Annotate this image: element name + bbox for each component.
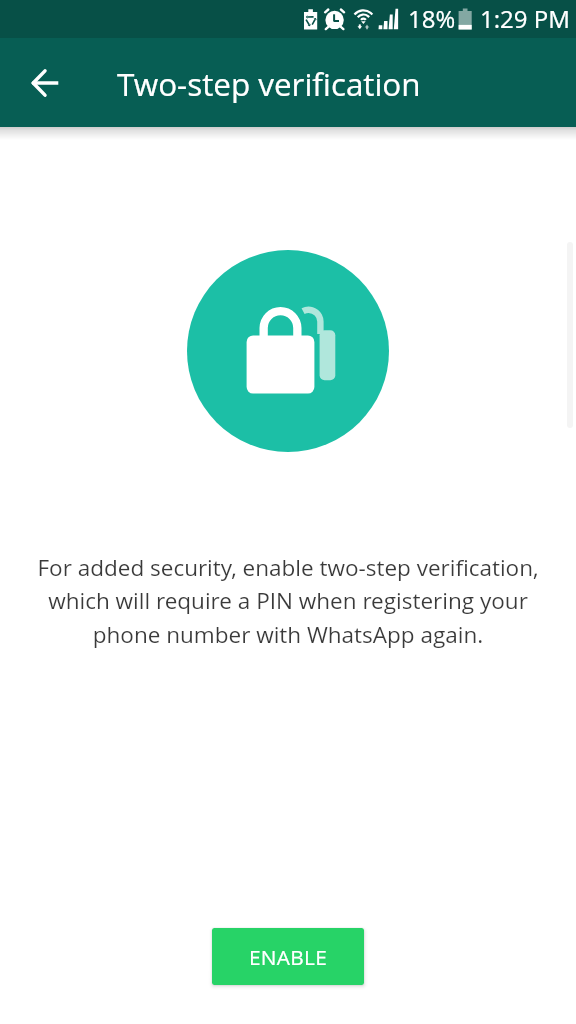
staticText: 1:29 PM — [480, 2, 570, 35]
staticText: Two-step verification — [117, 62, 421, 105]
button[interactable]: Navigate up — [19, 57, 71, 109]
button[interactable]: ENABLE — [212, 928, 364, 985]
staticText: For added security, enable two-step veri… — [0, 552, 576, 650]
staticText: 18% — [408, 2, 456, 35]
staticText: ENABLE — [249, 943, 328, 971]
